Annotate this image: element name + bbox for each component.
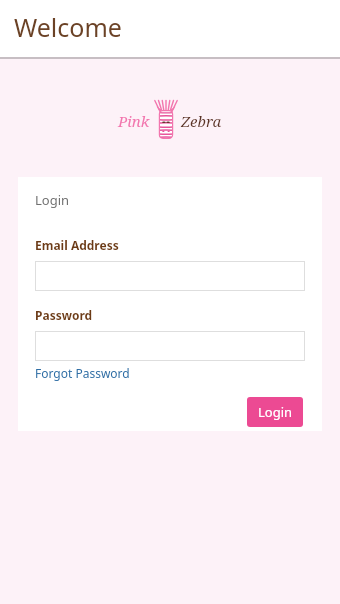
button[interactable] bbox=[35, 261, 305, 291]
staticText: Welcome bbox=[14, 10, 122, 44]
button[interactable]: Forgot Password bbox=[35, 365, 130, 381]
other: Pink Zebra logo bbox=[118, 97, 222, 141]
staticText: Email Address bbox=[35, 237, 119, 253]
staticText: Password bbox=[35, 307, 93, 323]
staticText: Forgot Password bbox=[35, 365, 130, 381]
staticText: Login bbox=[35, 191, 70, 209]
staticText: Login bbox=[258, 403, 293, 421]
button[interactable]: Login bbox=[247, 397, 303, 427]
staticText: Zebra bbox=[181, 111, 222, 131]
button[interactable] bbox=[35, 331, 305, 361]
staticText: Pink bbox=[118, 111, 150, 131]
